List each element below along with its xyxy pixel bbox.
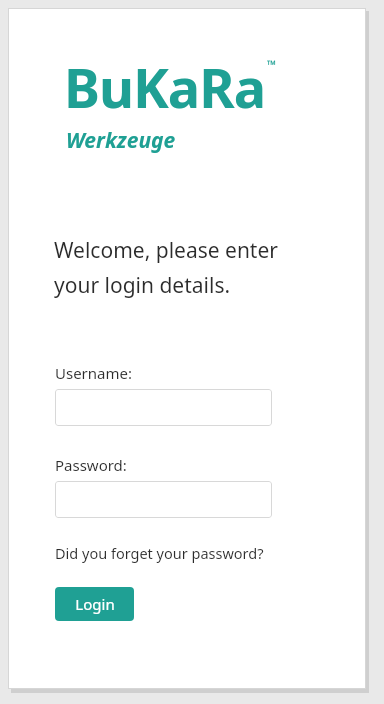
staticText: Did you forget your password? [55,543,264,563]
button[interactable]: Did you forget your password? [55,541,264,565]
button[interactable]: Text input field [55,389,272,426]
staticText: BuKaRa [64,50,265,124]
staticText: Username: [55,363,132,383]
staticText: your login details. [54,271,231,300]
button[interactable]: Login [55,587,134,621]
staticText: ™ [267,56,277,72]
staticText: Password: [55,455,127,475]
button[interactable]: Text input field [55,481,272,518]
staticText: Werkzeuge [66,126,176,155]
staticText: Welcome, please enter [54,236,278,265]
staticText: Login [75,594,115,614]
